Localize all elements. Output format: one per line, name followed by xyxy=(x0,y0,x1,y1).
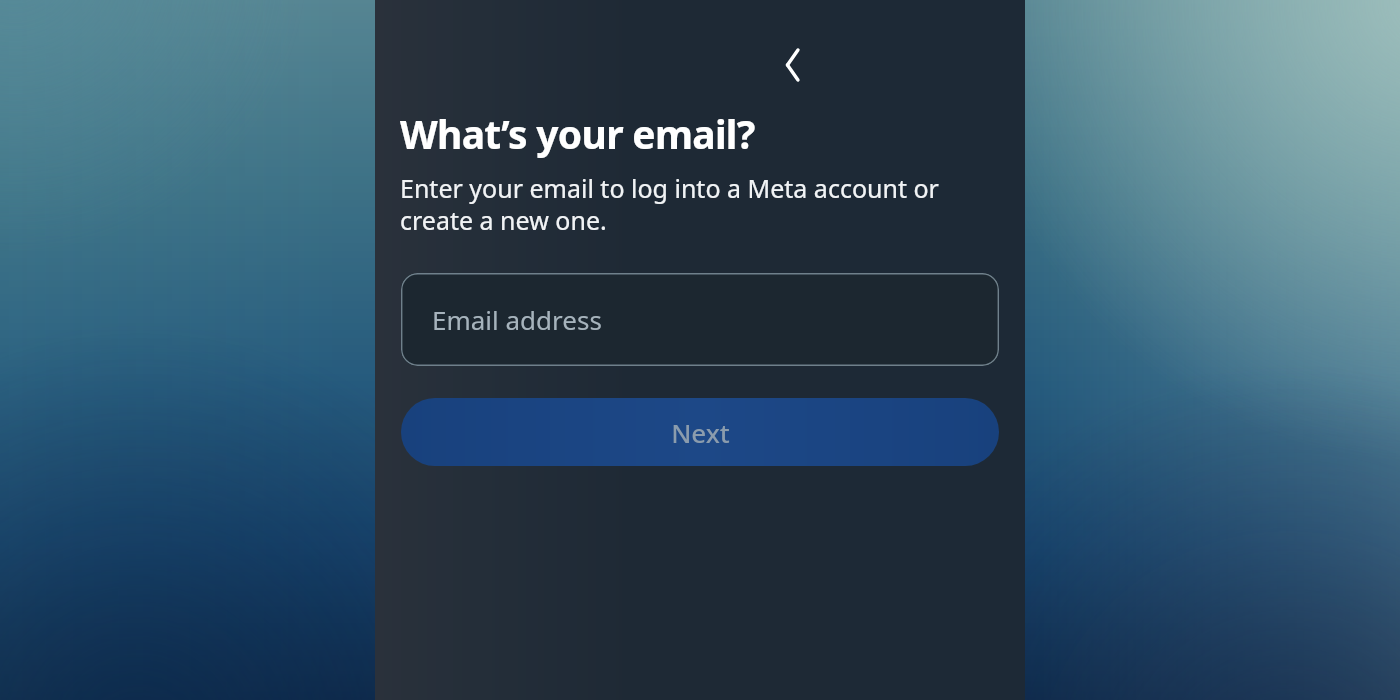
staticText: Enter your email to log into a Meta acco… xyxy=(400,171,945,237)
staticText: Email address xyxy=(432,302,602,337)
button[interactable]: Back xyxy=(761,37,817,93)
staticText: What’s your email? xyxy=(400,107,755,160)
button[interactable]: Email address xyxy=(401,273,999,366)
button[interactable]: Next xyxy=(401,398,999,466)
staticText: Next xyxy=(671,415,730,450)
